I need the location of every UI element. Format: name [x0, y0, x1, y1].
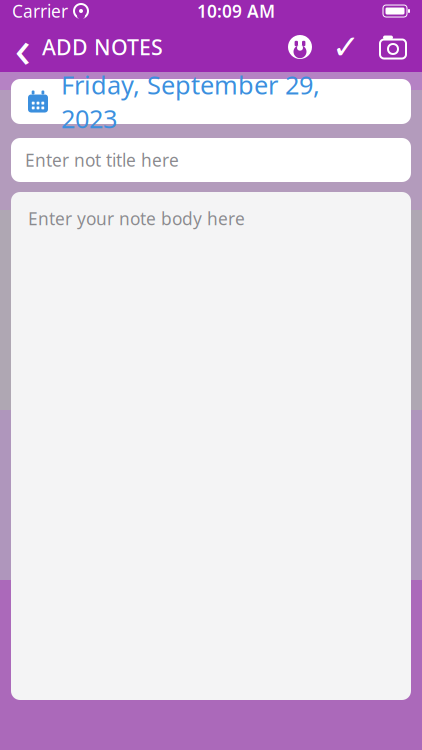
button[interactable]: Insert emoji: [278, 22, 322, 72]
button[interactable]: Enter not title here: [11, 138, 411, 182]
button[interactable]: Add photo: [370, 22, 416, 72]
staticText: ADD NOTES: [42, 33, 163, 61]
staticText: Carrier: [12, 0, 68, 22]
staticText: 10:09 AM: [197, 0, 275, 22]
staticText: ✓: [332, 28, 360, 66]
button[interactable]: Save note: [322, 22, 370, 72]
staticText: ‹: [14, 12, 31, 82]
button[interactable]: Friday, September 29, 2023: [11, 79, 411, 124]
button[interactable]: Enter your note body here: [11, 192, 411, 700]
staticText: Friday, September 29, 2023: [61, 68, 320, 135]
staticText: Enter your note body here: [28, 207, 245, 230]
button[interactable]: Back: [0, 22, 42, 72]
staticText: Enter not title here: [25, 148, 179, 171]
